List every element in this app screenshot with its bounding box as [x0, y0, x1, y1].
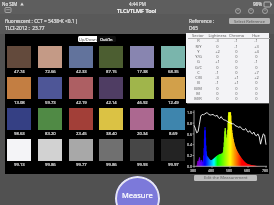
staticText: C/B [195, 75, 202, 80]
button[interactable]: Edit the Measurement [194, 175, 257, 181]
button[interactable]: Measure mode [235, 8, 241, 14]
staticText: Up/Down [79, 37, 97, 42]
staticText: 0 [216, 91, 219, 96]
staticText: +2 [254, 75, 259, 80]
button[interactable]: Settings [262, 8, 268, 14]
staticText: 0 [235, 96, 238, 101]
staticText: Select Reference [234, 19, 265, 24]
staticText: 12.49 [168, 100, 179, 106]
staticText: 87.15 [106, 69, 117, 75]
staticText: -1 [215, 80, 219, 85]
staticText: Y [197, 49, 200, 54]
staticText: TLCi/TLMF Tool [117, 7, 157, 14]
staticText: 0 [235, 91, 238, 96]
staticText: 0 [235, 59, 238, 64]
staticText: 83.20 [45, 131, 56, 137]
staticText: 42.14 [106, 100, 117, 106]
staticText: 42.19 [76, 100, 87, 106]
staticText: 0.2 [187, 153, 193, 158]
staticText: Sector [192, 33, 204, 38]
staticText: Y/G [195, 54, 202, 59]
staticText: 0 [255, 80, 258, 85]
staticText: 0 [255, 86, 258, 91]
staticText: Measure [122, 190, 153, 200]
staticText: +1 [234, 80, 239, 85]
button[interactable]: Up/Down [78, 36, 97, 42]
button[interactable]: Menu [5, 7, 11, 13]
button[interactable]: History [248, 8, 254, 14]
staticText: -1 [254, 59, 258, 64]
staticText: 47.74 [14, 69, 25, 75]
staticText: 99.97 [168, 162, 179, 168]
staticText: 99.93 [137, 162, 148, 168]
staticText: 0 [216, 54, 219, 59]
staticText: Chroma [229, 33, 244, 38]
staticText: R/Y [195, 44, 202, 49]
staticText: 0 [235, 70, 238, 75]
staticText: M/R [194, 96, 202, 101]
staticText: 0 [216, 96, 219, 101]
staticText: M [196, 91, 200, 96]
staticText: Out/In [100, 37, 113, 42]
staticText: 780 [262, 168, 269, 173]
staticText: 0 [235, 49, 238, 54]
staticText: -1 [234, 44, 238, 49]
staticText: 99.77 [76, 162, 87, 168]
staticText: 99.13 [14, 162, 25, 168]
staticText: -1 [215, 70, 219, 75]
staticText: Reference : [189, 18, 215, 25]
staticText: D65 [189, 25, 198, 32]
staticText: 4:44 PM [129, 1, 146, 7]
staticText: 0.8 [187, 121, 193, 126]
staticText: 0 [235, 65, 238, 70]
staticText: +1 [234, 75, 239, 80]
staticText: 23.45 [76, 131, 87, 137]
staticText: 0 [235, 54, 238, 59]
staticText: 580 [226, 168, 233, 173]
staticText: 68.35 [168, 69, 179, 75]
staticText: 0.4 [187, 142, 193, 147]
staticText: 0 [216, 44, 219, 49]
staticText: 13.08 [14, 100, 25, 106]
staticText: G/C [195, 65, 202, 70]
staticText: -3 [215, 38, 219, 43]
staticText: 1.0 [187, 110, 193, 115]
staticText: 42.33 [76, 69, 87, 75]
staticText: 99.86 [106, 162, 117, 168]
staticText: -3 [215, 75, 219, 80]
staticText: +3 [254, 44, 259, 49]
staticText: +1 [215, 59, 220, 64]
staticText: 59.73 [45, 100, 56, 106]
staticText: Lightness [208, 33, 227, 38]
staticText: B [197, 80, 200, 85]
staticText: 72.66 [45, 69, 56, 75]
staticText: Hue [252, 33, 260, 38]
staticText: 20.34 [137, 131, 148, 137]
staticText: -1 [254, 38, 258, 43]
staticText: 0 [255, 91, 258, 96]
staticText: 0.6 [187, 132, 193, 137]
button[interactable]: Out/In [97, 36, 116, 42]
staticText: 680 [244, 168, 251, 173]
staticText: TLCI-2012 : 23.77 [5, 25, 45, 32]
staticText: 0 [255, 96, 258, 101]
button[interactable]: Measure [115, 176, 160, 205]
button[interactable]: Select Reference [229, 18, 270, 24]
staticText: +2 [215, 49, 220, 54]
staticText: 17.38 [137, 69, 148, 75]
staticText: R [197, 38, 200, 43]
staticText: Edit the Measurement [204, 175, 248, 181]
staticText: 98.63 [14, 131, 25, 137]
staticText: +7 [254, 70, 259, 75]
staticText: 99.86 [45, 162, 56, 168]
staticText: +4 [254, 49, 259, 54]
staticText: 46.92 [137, 100, 148, 106]
staticText: 8.69 [169, 131, 178, 137]
staticText: 0 [216, 65, 219, 70]
staticText: 98% [253, 1, 262, 7]
staticText: B/M [194, 86, 202, 91]
staticText: -1 [234, 38, 238, 43]
staticText: 38.40 [106, 131, 117, 137]
staticText: 380 [190, 168, 197, 173]
staticText: G [197, 59, 200, 64]
